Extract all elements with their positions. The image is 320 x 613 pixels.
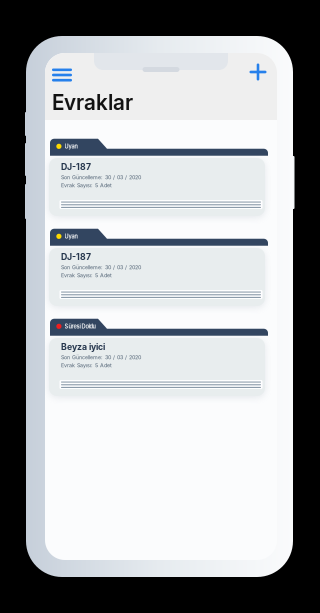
staticText: Süresi Doldu [64,323,95,330]
staticText: Son Güncelleme: 30 / 03 / 2020 [61,174,141,180]
staticText: Uyan [64,233,77,240]
staticText: Evraklar [52,90,133,115]
staticText: DJ-187 [61,162,91,172]
button[interactable]: Add [244,61,272,83]
button[interactable]: Menu [48,64,76,86]
button[interactable]: Uyan [49,139,268,216]
staticText: Son Güncelleme: 30 / 03 / 2020 [61,354,141,360]
staticText: DJ-187 [61,252,91,262]
button[interactable]: Süresi Doldu [49,319,268,396]
staticText: Evrak Sayısı: 5 Adet [61,182,112,188]
staticText: Evrak Sayısı: 5 Adet [61,362,112,368]
staticText: Evrak Sayısı: 5 Adet [61,272,112,278]
staticText: Beyza iyici [61,342,105,352]
button[interactable]: Uyan [49,229,268,306]
staticText: Son Güncelleme: 30 / 03 / 2020 [61,264,141,270]
staticText: Uyan [64,143,77,150]
